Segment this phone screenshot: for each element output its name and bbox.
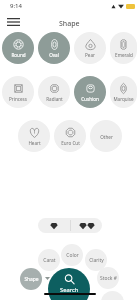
staticText: Cushion	[81, 96, 99, 102]
staticText: Shape	[24, 276, 39, 283]
staticText: Euro Cut	[61, 140, 80, 146]
staticText: Oval	[49, 52, 59, 58]
button[interactable]: Cushion	[74, 76, 106, 108]
button[interactable]: Pear	[74, 32, 106, 64]
button[interactable]: Stock #	[97, 267, 119, 289]
staticText: Stock #	[100, 275, 117, 282]
button[interactable]: Price	[101, 291, 124, 300]
button[interactable]: Menu	[1, 10, 25, 34]
button[interactable]: Heart	[18, 120, 50, 152]
staticText: Princess	[9, 96, 27, 102]
staticText: Carat	[43, 257, 56, 264]
button[interactable]: Emerald	[110, 32, 137, 64]
button[interactable]: Single stone	[38, 218, 70, 233]
staticText: Radiant	[46, 96, 63, 102]
button[interactable]: Princess	[2, 76, 34, 108]
staticText: Heart	[28, 140, 41, 146]
staticText: Emerald	[115, 52, 133, 58]
button[interactable]: Clarity	[85, 249, 107, 271]
staticText: 9:14	[10, 2, 22, 10]
button[interactable]: Oval	[38, 32, 70, 64]
staticText: Round	[11, 52, 26, 58]
button[interactable]: Euro Cut	[54, 120, 86, 152]
staticText: Color	[66, 252, 79, 259]
staticText: Clarity	[89, 257, 104, 264]
button[interactable]: Color	[61, 244, 83, 266]
button[interactable]: Pair of stones	[71, 218, 102, 233]
button[interactable]: Marquise	[110, 76, 137, 108]
staticText: Search	[60, 286, 79, 294]
button[interactable]: Search	[48, 268, 90, 300]
button[interactable]: Other	[90, 120, 122, 152]
staticText: Other	[100, 134, 113, 140]
staticText: Shape	[59, 19, 80, 29]
staticText: Pear	[85, 52, 95, 58]
button[interactable]: Radiant	[38, 76, 70, 108]
staticText: Marquise	[113, 96, 134, 102]
button[interactable]: Shape	[20, 268, 42, 290]
button[interactable]: Round	[2, 32, 34, 64]
button[interactable]: Carat	[38, 249, 60, 271]
